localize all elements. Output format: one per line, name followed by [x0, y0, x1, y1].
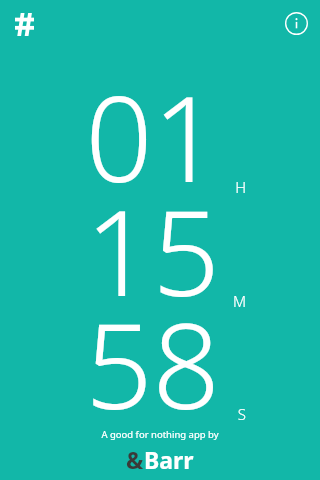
staticText: 15 — [0, 170, 220, 331]
staticText: A good for nothing app by — [0, 428, 320, 441]
button[interactable]: Info — [284, 11, 308, 35]
staticText: 58 — [0, 283, 220, 444]
staticText: M — [220, 291, 246, 311]
staticText: & — [126, 444, 144, 475]
staticText: Barr — [144, 444, 194, 475]
staticText: H — [220, 177, 246, 197]
button[interactable]: Menu — [11, 11, 37, 37]
staticText: 01 — [0, 56, 220, 217]
staticText: S — [220, 404, 246, 424]
